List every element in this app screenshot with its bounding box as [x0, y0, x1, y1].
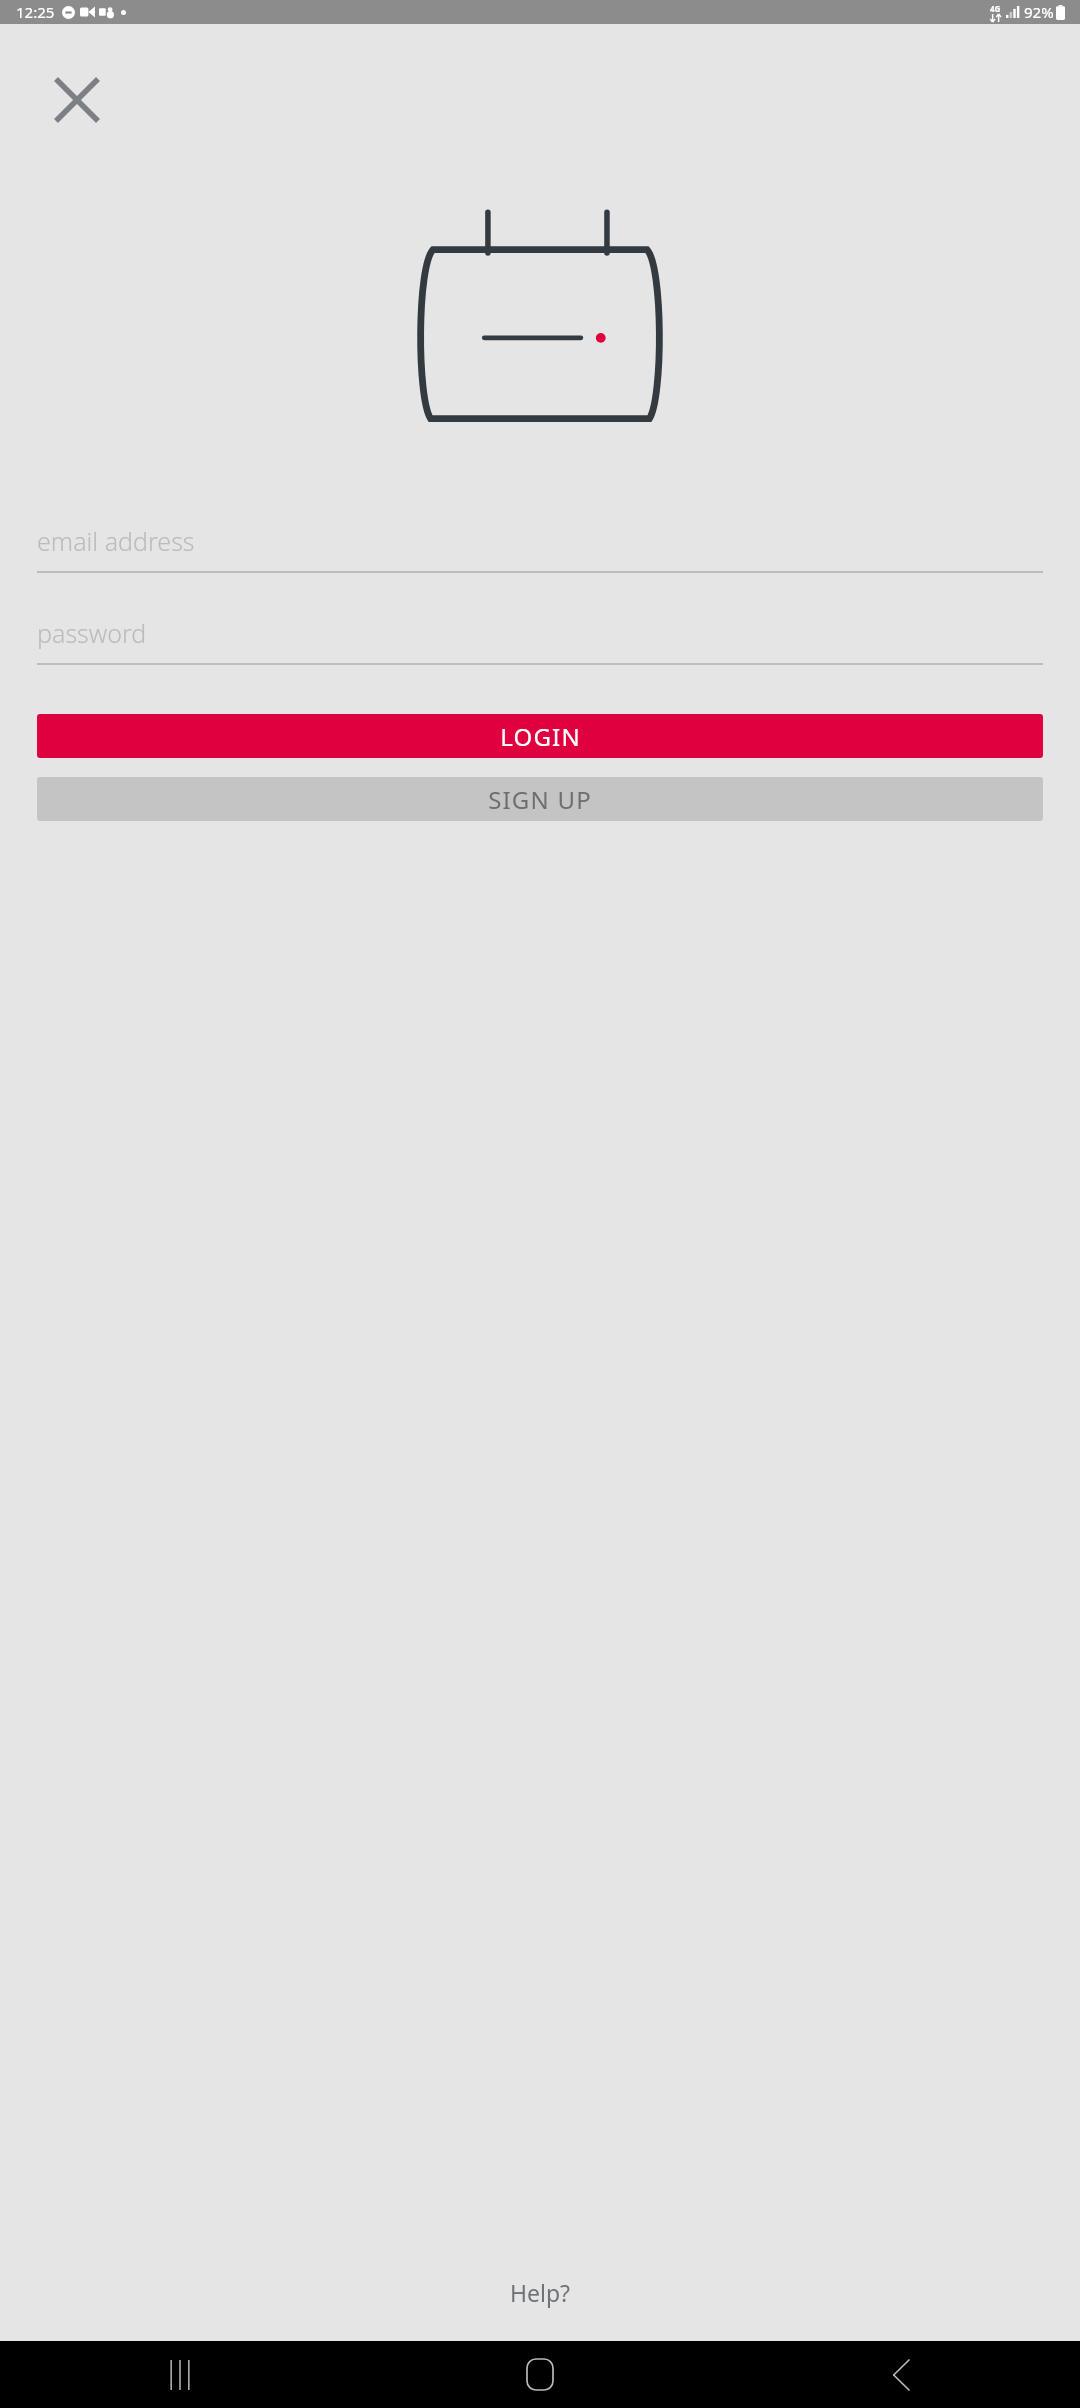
button[interactable]: password [37, 616, 1043, 665]
button[interactable]: email address [37, 524, 1043, 573]
staticText: SIGN UP [488, 783, 592, 816]
staticText: password [37, 616, 147, 650]
staticText: 92% [1024, 2, 1054, 22]
button[interactable]: SIGN UP [37, 777, 1043, 821]
button[interactable]: Help? [492, 2269, 589, 2316]
staticText: email address [37, 524, 195, 558]
staticText: 12:25 [16, 2, 55, 22]
button[interactable]: LOGIN [37, 714, 1043, 758]
button[interactable]: Home [360, 2341, 720, 2408]
staticText: Help? [510, 2277, 571, 2308]
button[interactable]: Recent apps [0, 2341, 360, 2408]
button[interactable]: Back [720, 2341, 1080, 2408]
staticText: LOGIN [500, 720, 581, 753]
button[interactable]: Close [34, 57, 120, 143]
staticText: 4G [990, 3, 1001, 14]
